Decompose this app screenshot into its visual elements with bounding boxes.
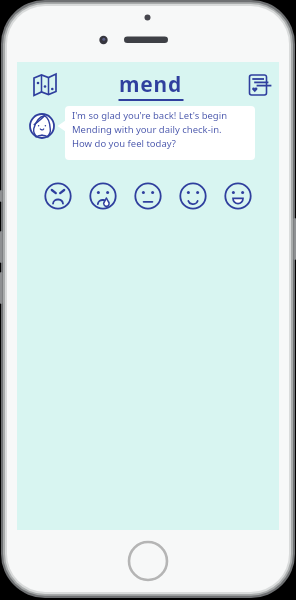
button[interactable] (223, 181, 253, 211)
button[interactable] (43, 181, 73, 211)
staticText: mend (119, 70, 183, 99)
staticText: I'm so glad you're back! Let's begin Men… (72, 109, 254, 150)
button[interactable] (88, 181, 118, 211)
button[interactable] (133, 181, 163, 211)
button[interactable] (28, 68, 62, 102)
button[interactable] (53, 104, 257, 162)
button[interactable] (243, 69, 277, 101)
button[interactable] (178, 181, 208, 211)
